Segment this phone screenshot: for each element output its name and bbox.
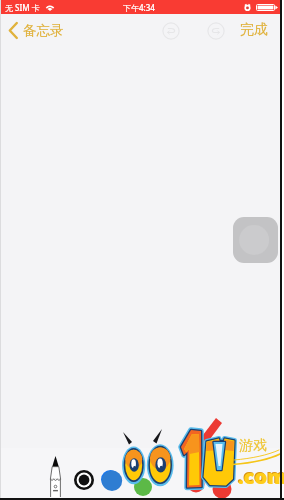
staticText: 无 SIM 卡 <box>5 2 40 13</box>
button[interactable]: Undo <box>162 22 180 40</box>
staticText: .com <box>237 462 284 489</box>
button[interactable]: Scroll handle <box>233 217 278 263</box>
button[interactable]: 完成 <box>240 21 268 39</box>
staticText: 备忘录 <box>23 22 64 39</box>
button[interactable]: Brush size <box>74 470 94 490</box>
button[interactable]: 备忘录 <box>8 22 64 39</box>
button[interactable]: Colour <box>101 470 120 489</box>
staticText: 游戏 <box>239 437 267 455</box>
button[interactable]: Redo <box>207 22 225 40</box>
staticText: 下午4:34 <box>123 2 155 13</box>
staticText: .com <box>238 463 284 490</box>
button[interactable]: Pencil tool <box>50 456 61 497</box>
